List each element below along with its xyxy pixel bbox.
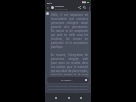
button[interactable]: Back bbox=[53, 95, 58, 100]
staticText: Hello, il est important de reconsiderer … bbox=[51, 13, 88, 75]
button[interactable]: Search bbox=[82, 5, 87, 10]
button[interactable]: Home bbox=[66, 95, 71, 100]
staticText: bot.gmail.com bbox=[55, 8, 68, 11]
staticText: ChatGPT bbox=[55, 5, 65, 8]
button[interactable]: Back bbox=[45, 5, 50, 10]
other: Send bbox=[85, 79, 87, 81]
button[interactable]: Hello, il est important de reconsiderer … bbox=[50, 12, 89, 76]
button[interactable]: Recents bbox=[78, 95, 83, 100]
staticText: ●● bbox=[82, 1, 86, 4]
button[interactable]: Share bbox=[77, 5, 82, 10]
staticText: Les messages envoyes sont chiffres de bo… bbox=[47, 85, 89, 92]
staticText: To Agent... bbox=[61, 79, 73, 82]
button[interactable]: To Agent... bbox=[47, 77, 89, 83]
staticText: 9:41 bbox=[47, 1, 52, 4]
button[interactable]: More options bbox=[87, 6, 91, 10]
